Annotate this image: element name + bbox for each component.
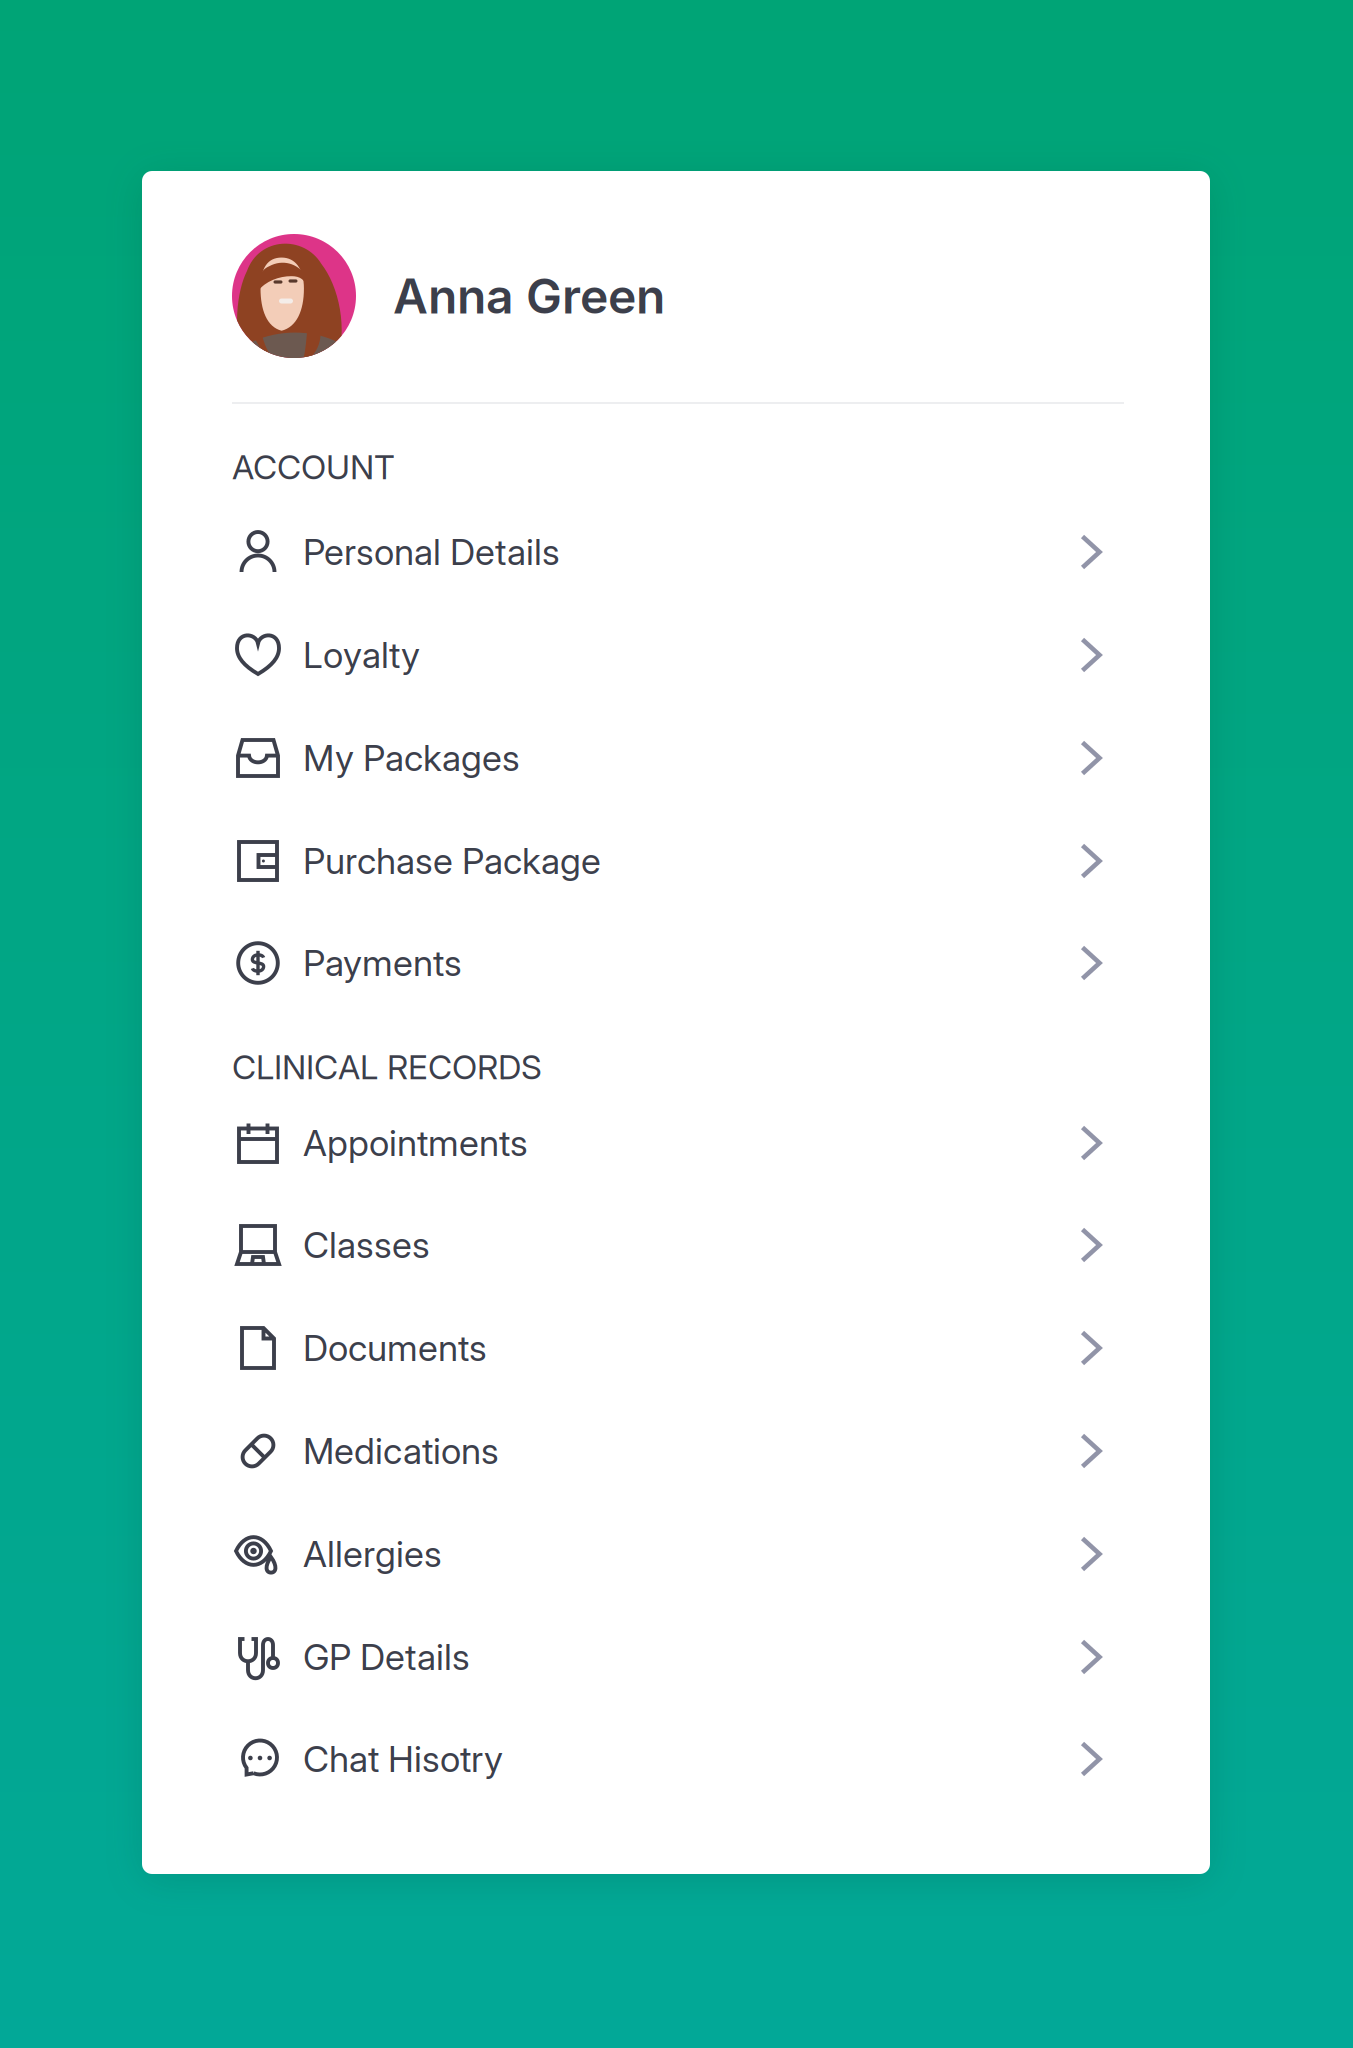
staticText: Documents — [303, 1326, 487, 1370]
button[interactable]: Loyalty — [142, 604, 1210, 706]
staticText: Medications — [303, 1429, 499, 1473]
button[interactable]: Chat Hisotry — [142, 1708, 1210, 1810]
button[interactable]: GP Details — [142, 1606, 1210, 1708]
button[interactable]: Classes — [142, 1194, 1210, 1296]
staticText: Appointments — [303, 1121, 528, 1165]
staticText: Chat Hisotry — [303, 1737, 503, 1781]
staticText: Allergies — [303, 1532, 442, 1576]
staticText: CLINICAL RECORDS — [232, 1047, 542, 1087]
staticText: Personal Details — [303, 530, 560, 574]
staticText: Anna Green — [393, 267, 665, 325]
staticText: Loyalty — [303, 633, 420, 677]
button[interactable]: Appointments — [142, 1092, 1210, 1194]
button[interactable]: Allergies — [142, 1503, 1210, 1605]
button[interactable]: My Packages — [142, 707, 1210, 809]
button[interactable]: Payments — [142, 912, 1210, 1014]
button[interactable]: Medications — [142, 1400, 1210, 1502]
staticText: ACCOUNT — [232, 447, 395, 487]
staticText: GP Details — [303, 1635, 470, 1679]
staticText: Payments — [303, 941, 462, 985]
button[interactable]: Documents — [142, 1297, 1210, 1399]
button[interactable]: Purchase Package — [142, 810, 1210, 912]
button[interactable]: Personal Details — [142, 501, 1210, 603]
staticText: Purchase Package — [303, 839, 601, 883]
staticText: Classes — [303, 1223, 430, 1267]
staticText: My Packages — [303, 736, 520, 780]
